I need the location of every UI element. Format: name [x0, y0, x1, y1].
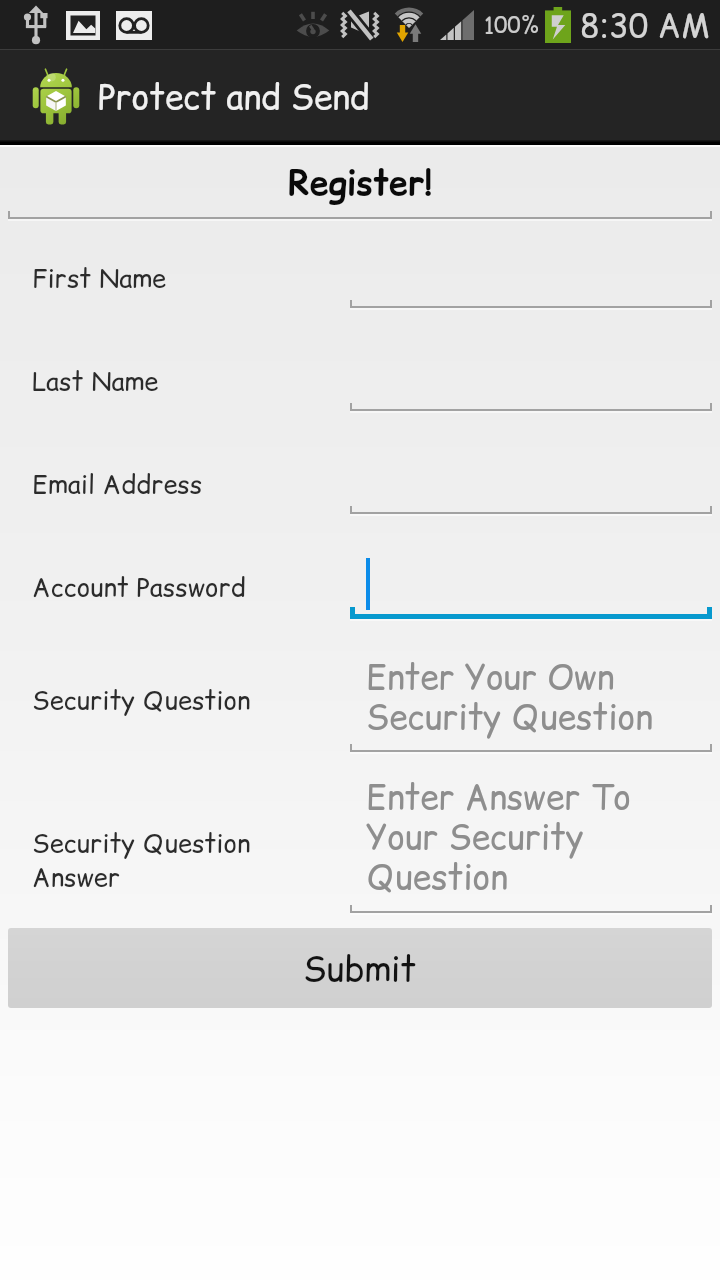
- staticText: Register!: [288, 159, 433, 206]
- button[interactable]: Last Name: [350, 349, 712, 411]
- other: Battery charging: [545, 7, 571, 43]
- staticText: Enter Answer To Your Security Question: [366, 774, 631, 901]
- staticText: Security Question Answer: [32, 825, 251, 895]
- other: Screenshot: [66, 11, 100, 40]
- staticText: Protect and Send: [98, 74, 370, 121]
- staticText: Last Name: [32, 363, 159, 399]
- staticText: First Name: [32, 260, 167, 296]
- staticText: Submit: [303, 945, 417, 992]
- button[interactable]: Security Question: [350, 648, 712, 752]
- other: Voicemail: [116, 11, 152, 40]
- other: USB connected: [24, 5, 48, 45]
- staticText: Enter Your Own Security Question: [366, 654, 653, 741]
- other: Eye care mode: [296, 10, 330, 40]
- staticText: Email Address: [32, 466, 203, 502]
- other: Silent with vibrate: [341, 9, 381, 41]
- button[interactable]: Account Password: [350, 552, 712, 618]
- button[interactable]: Register!: [0, 152, 720, 212]
- other: App icon: [32, 68, 80, 128]
- button[interactable]: Email Address: [350, 452, 712, 514]
- button[interactable]: Submit: [8, 928, 712, 1008]
- other: Wi-Fi: [391, 8, 427, 42]
- other: Mobile signal: [440, 10, 474, 40]
- button[interactable]: Security Question Answer: [350, 768, 712, 913]
- staticText: Account Password: [32, 569, 246, 605]
- staticText: 8:30 AM: [580, 3, 710, 48]
- staticText: Security Question: [32, 682, 251, 718]
- button[interactable]: First Name: [350, 246, 712, 308]
- staticText: 100%: [484, 10, 539, 41]
